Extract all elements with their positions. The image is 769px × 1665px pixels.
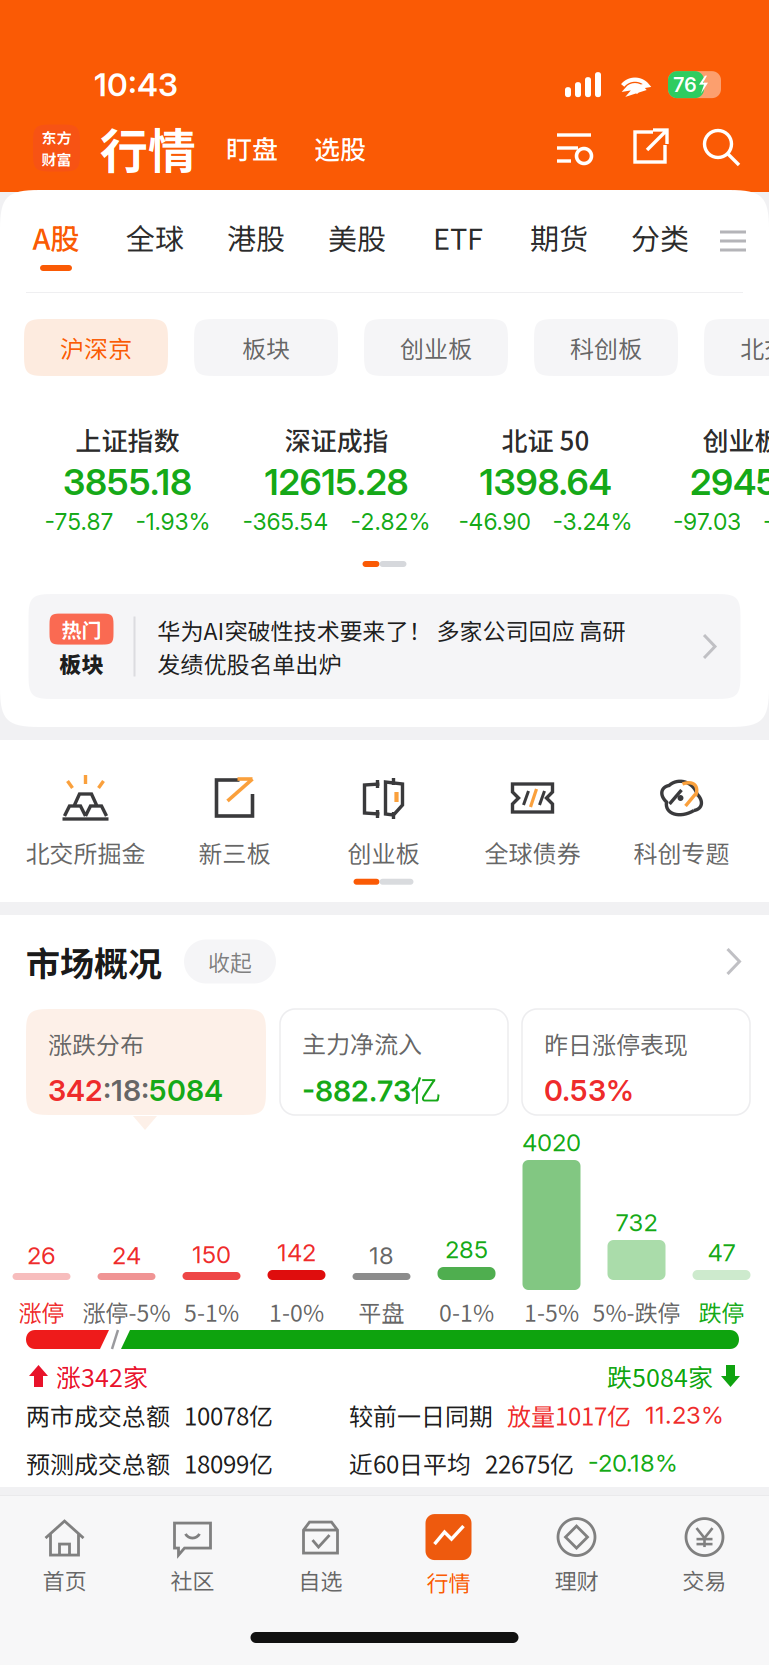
staticText: 创业板指 xyxy=(702,420,769,458)
button[interactable]: 东方财富 xyxy=(33,124,80,171)
button[interactable]: 搜索 xyxy=(702,128,742,168)
staticText: 盯盘 xyxy=(226,129,278,167)
staticText: 交易 xyxy=(682,1564,726,1596)
button[interactable]: 上证指数 xyxy=(23,403,232,553)
staticText: 期货 xyxy=(530,216,588,258)
staticText: 近60日平均 xyxy=(349,1446,471,1480)
staticText: 全球 xyxy=(126,216,184,258)
button[interactable]: 板块 xyxy=(194,319,338,376)
staticText: -20.18% xyxy=(588,1448,678,1477)
staticText: 11.23% xyxy=(645,1400,724,1429)
button[interactable]: 创业板指 xyxy=(650,403,769,553)
button[interactable]: 交易 xyxy=(640,1508,768,1604)
staticText: 港股 xyxy=(227,216,285,258)
button[interactable]: 北证 50 xyxy=(441,403,650,553)
staticText: 涨停 xyxy=(18,1295,64,1328)
staticText: 5%-跌停 xyxy=(592,1295,680,1328)
staticText: -1.93% xyxy=(135,508,210,535)
staticText: -97.03 xyxy=(673,508,741,535)
staticText: 上证指数 xyxy=(75,420,179,458)
button[interactable]: 深证成指 xyxy=(232,403,441,553)
button[interactable]: 主力净流入 xyxy=(280,1009,508,1115)
button[interactable]: 期货 xyxy=(529,190,589,292)
staticText: 创业板 xyxy=(400,330,472,365)
button[interactable]: 创业板 xyxy=(309,740,458,902)
staticText: -75.87 xyxy=(44,508,113,535)
staticText: 285 xyxy=(445,1235,488,1264)
staticText: 18 xyxy=(369,1241,394,1270)
button[interactable]: 美股 xyxy=(327,190,387,292)
button[interactable]: 自选 xyxy=(256,1508,384,1604)
staticText: 142 xyxy=(277,1238,316,1267)
staticText: -365.54 xyxy=(242,508,328,535)
button[interactable]: 行情 xyxy=(384,1508,512,1604)
staticText: 预测成交总额 xyxy=(26,1446,170,1480)
staticText: -2.82% xyxy=(350,508,430,535)
button[interactable]: 设置 xyxy=(556,129,596,167)
staticText: 板块 xyxy=(59,648,103,679)
staticText: 平盘 xyxy=(358,1295,404,1328)
button[interactable]: ETF xyxy=(428,190,488,292)
staticText: 涨停-5% xyxy=(82,1295,170,1328)
button[interactable]: 全球 xyxy=(125,190,185,292)
staticText: 47 xyxy=(707,1238,735,1267)
staticText: 主力净流入 xyxy=(302,1025,422,1060)
button[interactable]: 科创板 xyxy=(534,319,678,376)
staticText: 3855.18 xyxy=(63,460,192,504)
button[interactable]: 分享 xyxy=(631,128,671,168)
staticText: 跌停 xyxy=(698,1295,744,1328)
staticText: 理财 xyxy=(554,1564,598,1596)
button[interactable]: 北交所掘金 xyxy=(11,740,160,902)
staticText: 732 xyxy=(615,1208,657,1237)
button[interactable]: 分类 xyxy=(630,190,690,292)
staticText: 热门 xyxy=(61,615,101,644)
staticText: 1-5% xyxy=(524,1295,579,1328)
staticText: -3.24% xyxy=(552,508,632,535)
button[interactable]: 更多分类 xyxy=(719,229,747,253)
button[interactable]: 新三板 xyxy=(160,740,309,902)
button[interactable]: 港股 xyxy=(226,190,286,292)
button[interactable]: 行情 xyxy=(100,113,196,183)
staticText: ETF xyxy=(433,216,483,258)
button[interactable]: 全球债券 xyxy=(458,740,607,902)
button[interactable]: 昨日涨停表现 xyxy=(522,1009,750,1115)
button[interactable]: 社区 xyxy=(128,1508,256,1604)
staticText: 10:43 xyxy=(94,65,178,104)
staticText: 2945.18 xyxy=(690,460,769,504)
staticText: 5-1% xyxy=(184,1295,239,1328)
staticText: 首页 xyxy=(42,1564,86,1596)
button[interactable]: 创业板 xyxy=(364,319,508,376)
button[interactable]: 收起 xyxy=(184,939,276,983)
button[interactable]: A股 xyxy=(26,190,86,292)
staticText: 4020 xyxy=(522,1128,581,1157)
staticText: 24 xyxy=(112,1241,141,1270)
staticText: 科创板 xyxy=(570,330,642,365)
staticText: 选股 xyxy=(314,129,366,167)
staticText: 板块 xyxy=(242,330,290,365)
button[interactable]: 首页 xyxy=(0,1508,128,1604)
button[interactable]: 更多 xyxy=(726,947,741,975)
button[interactable]: 沪深京 xyxy=(24,319,168,376)
staticText: 放量1017亿 xyxy=(507,1398,631,1432)
staticText: 较前一日同期 xyxy=(349,1398,493,1432)
staticText: 华为AI突破性技术要来了！ 多家公司回应 高研 xyxy=(157,613,625,646)
staticText: -46.90 xyxy=(458,508,530,535)
staticText: 涨342家 xyxy=(56,1358,148,1394)
staticText: 26 xyxy=(27,1241,56,1270)
staticText: 北证 50 xyxy=(501,420,589,458)
staticText: 自选 xyxy=(298,1564,342,1596)
staticText: 全球债券 xyxy=(484,835,580,870)
staticText: 5084 xyxy=(149,1073,223,1108)
staticText: A股 xyxy=(32,216,79,258)
button[interactable]: 涨跌分布 xyxy=(26,1009,266,1115)
staticText: 342 xyxy=(48,1073,103,1108)
button[interactable]: 选股 xyxy=(314,129,366,167)
staticText: 科创专题 xyxy=(633,835,729,870)
staticText: 创业板 xyxy=(347,835,419,870)
button[interactable]: 理财 xyxy=(512,1508,640,1604)
button[interactable]: 科创专题 xyxy=(607,740,756,902)
button[interactable]: 盯盘 xyxy=(226,129,278,167)
staticText: 涨跌分布 xyxy=(48,1026,144,1061)
button[interactable]: 北交所 xyxy=(704,319,769,376)
button[interactable]: 热门 xyxy=(28,594,740,699)
